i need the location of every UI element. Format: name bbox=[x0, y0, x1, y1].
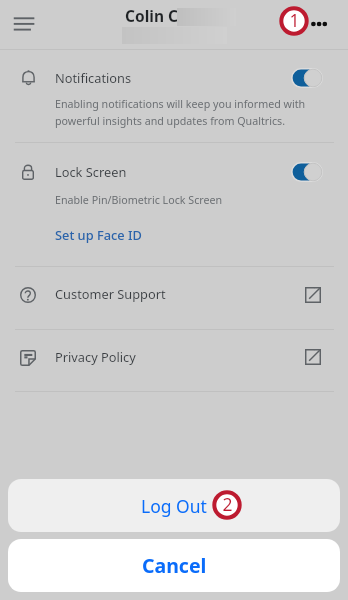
button[interactable]: Toggle Notifications bbox=[291, 68, 323, 88]
button[interactable]: Toggle Lock Screen bbox=[291, 162, 323, 182]
button[interactable]: Cancel bbox=[8, 539, 340, 592]
staticText: Notifications bbox=[55, 69, 132, 86]
button[interactable]: Notifications bbox=[0, 57, 348, 98]
staticText: Enabling notifications will keep you inf… bbox=[55, 97, 306, 128]
button[interactable]: Log Out bbox=[8, 479, 340, 532]
staticText: Privacy Policy bbox=[55, 348, 136, 365]
staticText: Set up Face ID bbox=[55, 226, 142, 243]
staticText: Colin C bbox=[125, 5, 178, 26]
staticText: Lock Screen bbox=[55, 163, 127, 180]
staticText: Cancel bbox=[142, 552, 207, 579]
staticText: 1 bbox=[289, 8, 300, 32]
staticText: Log Out bbox=[141, 494, 207, 518]
button[interactable]: Customer Support bbox=[0, 267, 348, 329]
staticText: 2 bbox=[222, 492, 233, 516]
staticText: Customer Support bbox=[55, 285, 166, 302]
button[interactable]: Lock Screen bbox=[0, 151, 348, 192]
button[interactable]: Privacy Policy bbox=[0, 330, 348, 391]
button[interactable]: Set up Face ID bbox=[55, 226, 142, 243]
button[interactable]: More options bbox=[300, 5, 337, 42]
button[interactable]: Menu bbox=[0, 3, 48, 45]
staticText: Enable Pin/Biometric Lock Screen bbox=[55, 193, 223, 208]
